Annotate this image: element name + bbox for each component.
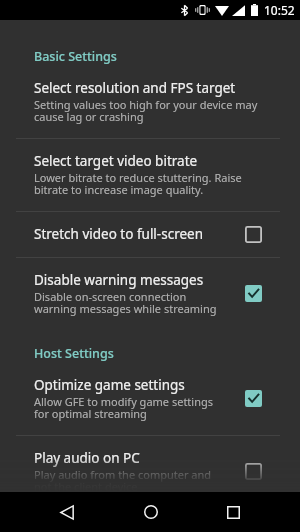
staticText: Stretch video to full-screen — [34, 225, 204, 243]
button[interactable]: Select resolution and FPS target — [0, 66, 300, 138]
staticText: Lower bitrate to reduce stuttering. Rais… — [34, 170, 269, 197]
staticText: Setting values too high for your device … — [34, 97, 269, 124]
staticText: Host Settings — [34, 345, 114, 362]
staticText: Optimize game settings — [34, 376, 185, 394]
staticText: Allow GFE to modify game settings for op… — [34, 394, 224, 421]
staticText: Play audio on PC — [34, 449, 140, 467]
button[interactable]: Recent apps — [192, 492, 275, 532]
staticText: Disable on-screen connection warning mes… — [34, 289, 224, 316]
staticText: Disable warning messages — [34, 271, 204, 289]
staticText: Select resolution and FPS target — [34, 79, 236, 97]
button[interactable]: Back — [25, 492, 109, 532]
staticText: Select target video bitrate — [34, 152, 198, 170]
button[interactable]: Optimize game settings — [0, 363, 300, 435]
staticText: Basic Settings — [34, 48, 117, 65]
button[interactable]: Play audio on PC — [0, 436, 300, 492]
button[interactable]: Disable warning messages — [0, 258, 300, 330]
button[interactable]: Select target video bitrate — [0, 139, 300, 211]
staticText: Play audio from the computer and not the… — [34, 467, 224, 492]
button[interactable]: Stretch video to full-screen — [0, 212, 300, 257]
staticText: 10:52 — [264, 2, 295, 18]
button[interactable]: Home — [109, 492, 192, 532]
